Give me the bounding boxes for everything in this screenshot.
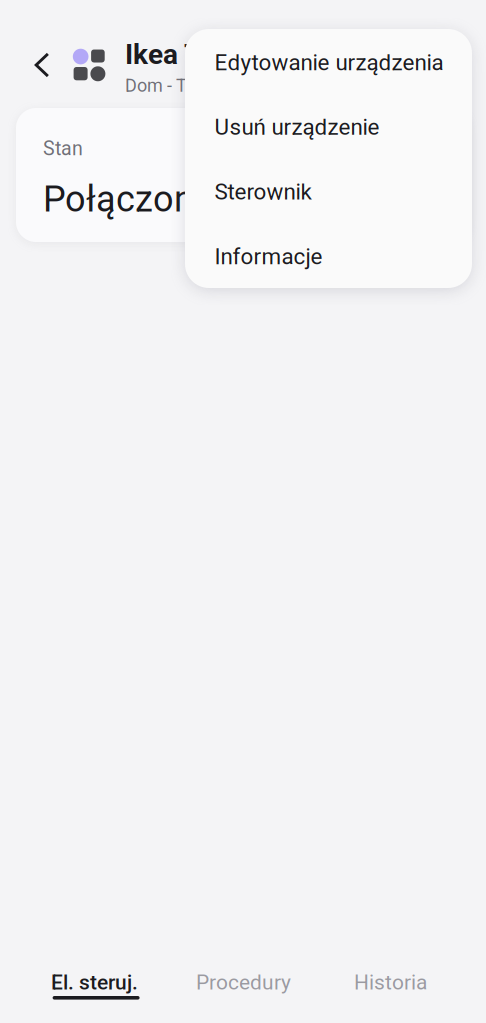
staticText: Stan — [43, 137, 83, 160]
staticText: Historia — [354, 970, 427, 994]
button[interactable]: Usuń urządzenie — [185, 94, 472, 158]
staticText: Procedury — [196, 970, 291, 994]
staticText: Edytowanie urządzenia — [214, 49, 443, 76]
staticText: El. steruj. — [51, 970, 138, 994]
button[interactable]: Informacje — [185, 223, 472, 287]
staticText: Sterownik — [214, 179, 311, 205]
button[interactable]: Back — [19, 42, 65, 88]
button[interactable]: Sterownik — [185, 158, 472, 222]
staticText: Informacje — [214, 243, 322, 270]
staticText: Usuń urządzenie — [214, 114, 379, 140]
staticText: Ikea Tradfri — [125, 38, 268, 71]
button[interactable]: Procedury — [162, 961, 324, 1023]
button[interactable]: El. steruj. — [0, 961, 162, 1023]
staticText: Połączono — [43, 178, 215, 220]
button[interactable]: Edytowanie urządzenia — [185, 29, 472, 93]
staticText: Dom - Typ urządzenia — [125, 75, 297, 96]
button[interactable]: Historia — [318, 961, 486, 1023]
